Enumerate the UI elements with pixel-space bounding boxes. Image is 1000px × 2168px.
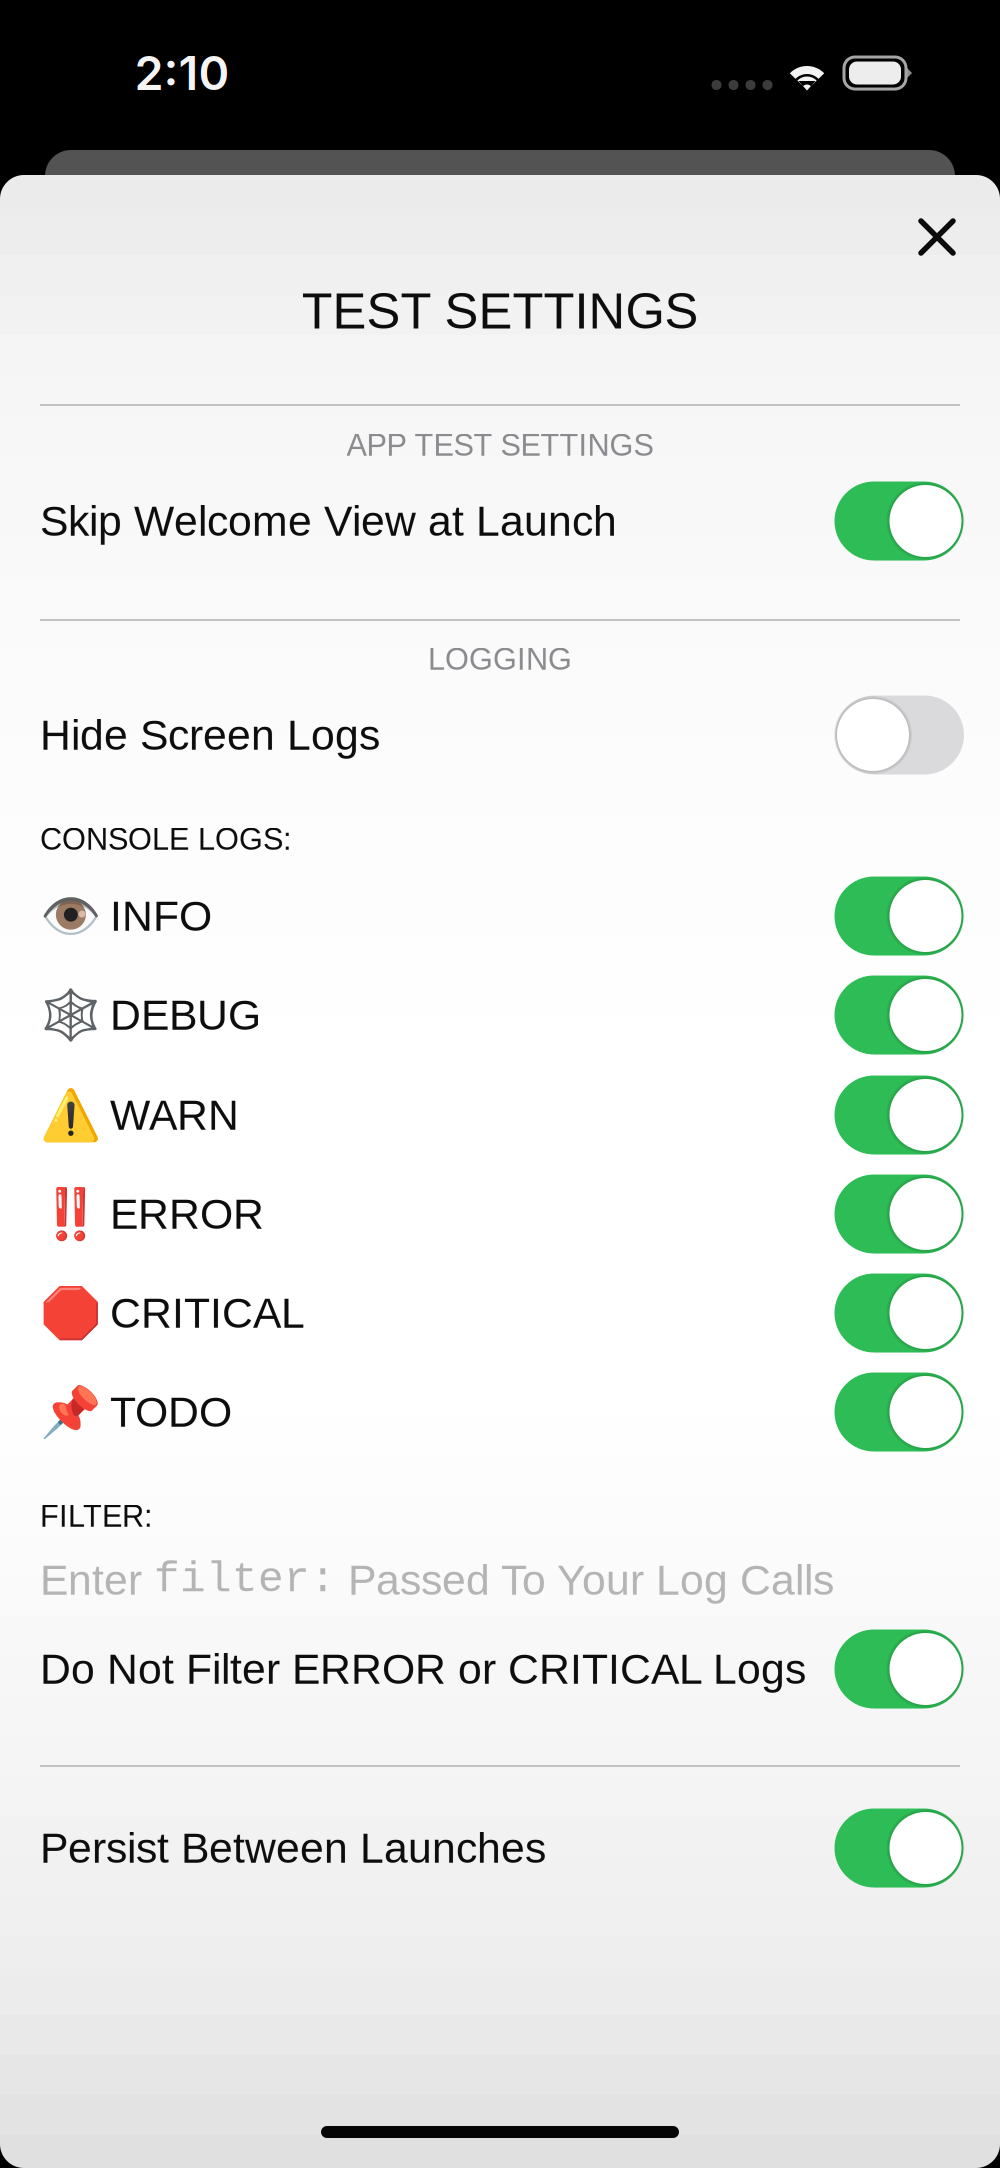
- staticText: Persist Between Launches: [40, 1824, 546, 1872]
- staticText: 📌: [40, 1383, 101, 1441]
- staticText: Do Not Filter ERROR or CRITICAL Logs: [40, 1645, 806, 1693]
- staticText: Enter: [40, 1556, 154, 1604]
- staticText: 👁: [40, 887, 101, 945]
- staticText: ‼️: [40, 1185, 101, 1243]
- staticText: Skip Welcome View at Launch: [40, 497, 617, 545]
- staticText: LOGGING: [428, 642, 572, 676]
- staticText: APP TEST SETTINGS: [346, 428, 653, 462]
- staticText: CRITICAL: [110, 1289, 305, 1337]
- button[interactable]: Skip Welcome View at Launch: [40, 473, 964, 569]
- button[interactable]: Close: [889, 189, 985, 285]
- staticText: Passed To Your Log Calls: [336, 1556, 834, 1604]
- button[interactable]: Persist Between Launches: [40, 1800, 964, 1896]
- staticText: 🕸: [40, 986, 101, 1044]
- button[interactable]: Enter: [40, 1549, 960, 1611]
- staticText: INFO: [110, 892, 212, 940]
- staticText: filter:: [154, 1556, 336, 1604]
- button[interactable]: ⚠️: [40, 1069, 964, 1161]
- staticText: Hide Screen Logs: [40, 711, 380, 759]
- button[interactable]: 🕸: [40, 969, 964, 1061]
- staticText: DEBUG: [110, 991, 261, 1039]
- button[interactable]: 📌: [40, 1366, 964, 1458]
- staticText: 2:10: [134, 45, 229, 101]
- staticText: 🛑: [40, 1284, 101, 1342]
- staticText: ⚠️: [40, 1086, 101, 1144]
- staticText: WARN: [110, 1091, 239, 1139]
- button[interactable]: 👁: [40, 870, 964, 962]
- button[interactable]: Hide Screen Logs: [40, 687, 964, 783]
- staticText: ERROR: [110, 1190, 264, 1238]
- button[interactable]: 🛑: [40, 1267, 964, 1359]
- staticText: FILTER:: [40, 1499, 153, 1533]
- button[interactable]: Do Not Filter ERROR or CRITICAL Logs: [40, 1621, 964, 1717]
- staticText: CONSOLE LOGS:: [40, 822, 292, 856]
- button[interactable]: ‼️: [40, 1168, 964, 1260]
- staticText: TODO: [110, 1388, 232, 1436]
- staticText: TEST SETTINGS: [301, 283, 698, 339]
